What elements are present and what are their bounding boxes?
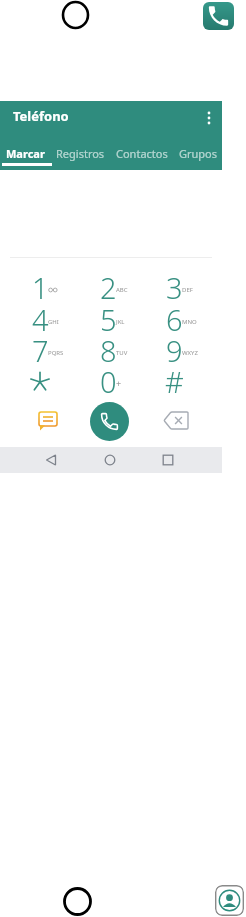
staticText: Teléfono: [13, 107, 69, 125]
staticText: 3: [166, 268, 183, 302]
staticText: #: [165, 362, 184, 396]
staticText: MNO: [182, 318, 197, 326]
staticText: 5: [100, 300, 117, 334]
button[interactable]: [38, 411, 58, 431]
staticText: 6: [166, 300, 183, 334]
staticText: PQRS: [48, 349, 64, 357]
button[interactable]: [203, 2, 234, 30]
staticText: 8: [100, 331, 117, 365]
staticText: JKL: [116, 318, 125, 326]
staticText: +: [116, 377, 122, 389]
staticText: 9: [166, 331, 183, 365]
button[interactable]: [45, 454, 57, 466]
button[interactable]: [164, 411, 189, 430]
button[interactable]: 5: [76, 302, 140, 336]
staticText: ABC: [116, 286, 128, 294]
staticText: 4: [32, 300, 49, 334]
staticText: TUV: [116, 349, 128, 357]
staticText: 0: [100, 362, 117, 396]
button[interactable]: 0: [76, 364, 140, 398]
button[interactable]: 9: [142, 333, 206, 367]
button[interactable]: 2: [76, 270, 140, 304]
button[interactable]: [8, 364, 72, 398]
staticText: WXYZ: [182, 349, 198, 357]
button[interactable]: [206, 111, 212, 125]
button[interactable]: Grupos: [179, 146, 218, 161]
button[interactable]: #: [142, 364, 206, 398]
button[interactable]: [104, 454, 116, 466]
staticText: GHI: [48, 318, 59, 326]
button[interactable]: 8: [76, 333, 140, 367]
button[interactable]: [215, 885, 244, 916]
button[interactable]: 1: [8, 270, 72, 304]
button[interactable]: Contactos: [116, 146, 168, 161]
button[interactable]: 7: [8, 333, 72, 367]
button[interactable]: Marcar: [6, 146, 45, 161]
staticText: 1: [32, 268, 49, 302]
button[interactable]: 4: [8, 302, 72, 336]
button[interactable]: 6: [142, 302, 206, 336]
staticText: 7: [32, 331, 49, 365]
button[interactable]: [90, 402, 129, 441]
button[interactable]: [162, 454, 174, 466]
button[interactable]: 3: [142, 270, 206, 304]
staticText: DEF: [182, 286, 193, 294]
staticText: 2: [100, 268, 117, 302]
button[interactable]: Registros: [56, 146, 105, 161]
